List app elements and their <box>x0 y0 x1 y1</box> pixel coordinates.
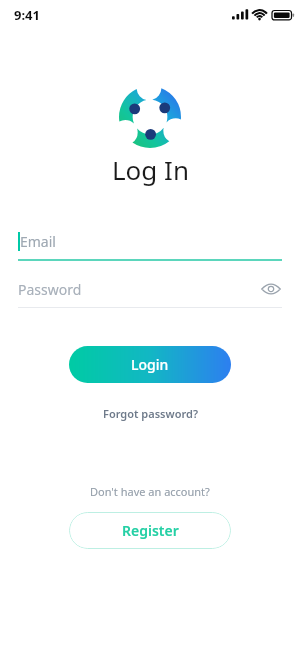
button[interactable]: Email <box>18 232 282 261</box>
staticText: Don't have an account? <box>90 484 210 499</box>
staticText: Forgot password? <box>103 406 198 421</box>
staticText: Register <box>122 521 179 540</box>
button[interactable]: Forgot password? <box>97 403 204 424</box>
button[interactable]: Password <box>18 278 282 308</box>
staticText: Login <box>131 355 169 374</box>
button[interactable]: Register <box>69 512 231 549</box>
staticText: Log In <box>112 152 189 187</box>
staticText: Email <box>20 232 56 251</box>
button[interactable]: Login <box>69 346 231 383</box>
staticText: Password <box>18 280 260 299</box>
button[interactable]: Show password <box>260 278 282 300</box>
staticText: 9:41 <box>14 6 40 24</box>
